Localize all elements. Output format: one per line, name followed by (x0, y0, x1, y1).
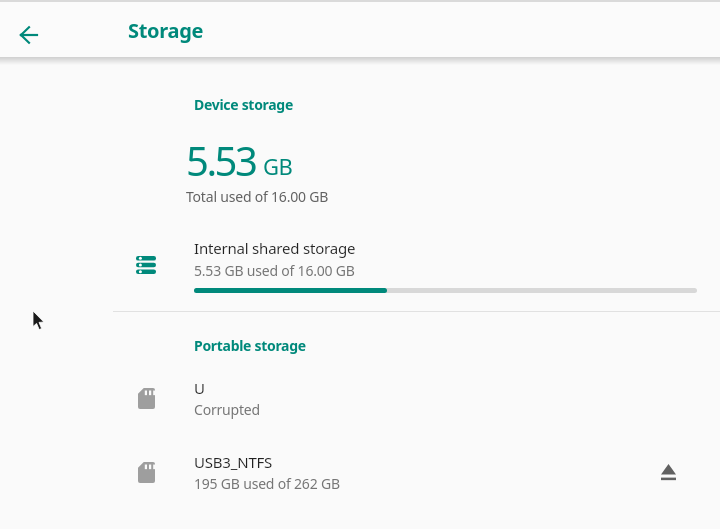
staticText: Storage (128, 17, 204, 44)
staticText: 5.53 GB used of 16.00 GB (194, 261, 355, 280)
button[interactable] (13, 19, 45, 51)
button[interactable]: U (113, 374, 720, 436)
staticText: Portable storage (194, 336, 306, 355)
button[interactable]: Internal shared storage (113, 230, 720, 300)
staticText: USB3_NTFS (194, 452, 273, 472)
staticText: 5.53 (186, 133, 256, 187)
staticText: 195 GB used of 262 GB (194, 474, 340, 493)
staticText: Total used of 16.00 GB (186, 187, 329, 206)
staticText: GB (263, 151, 293, 181)
button[interactable] (648, 452, 688, 492)
staticText: Device storage (194, 95, 293, 114)
button[interactable]: USB3_NTFS (113, 449, 720, 511)
staticText: U (194, 378, 205, 398)
staticText: Internal shared storage (194, 238, 356, 258)
staticText: Corrupted (194, 400, 260, 419)
